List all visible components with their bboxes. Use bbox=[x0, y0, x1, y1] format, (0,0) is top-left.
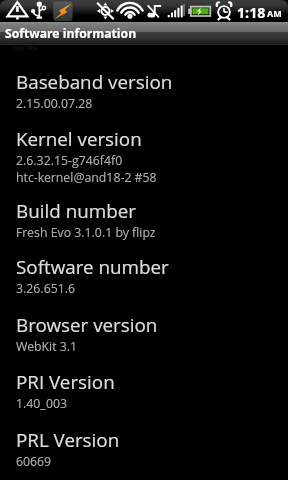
staticText: Software information bbox=[5, 25, 137, 42]
staticText: Build number bbox=[16, 198, 136, 224]
staticText: Browser version bbox=[16, 312, 158, 338]
staticText: Kernel version bbox=[16, 126, 142, 152]
staticText: htc-kernel@and18-2 #58 bbox=[16, 169, 157, 186]
staticText: PRI Version bbox=[16, 369, 115, 395]
staticText: flipz • flipz bbox=[14, 45, 38, 51]
staticText: PRL Version bbox=[16, 427, 120, 453]
staticText: AM bbox=[267, 7, 282, 19]
staticText: 2.6.32.15-g746f4f0 bbox=[16, 152, 123, 169]
staticText: 60669 bbox=[16, 453, 52, 470]
staticText: 2.15.00.07.28 bbox=[16, 95, 93, 112]
button[interactable]: Build number bbox=[0, 198, 288, 255]
button[interactable]: Kernel version bbox=[0, 126, 288, 198]
button[interactable]: Baseband version bbox=[0, 69, 288, 126]
staticText: 1:18 bbox=[237, 3, 266, 22]
staticText: 1.40_003 bbox=[16, 395, 67, 412]
button[interactable]: Browser version bbox=[0, 312, 288, 369]
button[interactable]: PRI Version bbox=[0, 369, 288, 426]
staticText: Fresh Evo 3.1.0.1 by flipz bbox=[16, 224, 156, 241]
button[interactable]: PRL Version bbox=[0, 427, 288, 480]
staticText: 3.26.651.6 bbox=[16, 280, 76, 297]
staticText: Software number bbox=[16, 254, 169, 280]
staticText: Baseband version bbox=[16, 69, 173, 95]
button[interactable]: Software number bbox=[0, 254, 288, 311]
staticText: WebKit 3.1 bbox=[16, 338, 78, 355]
